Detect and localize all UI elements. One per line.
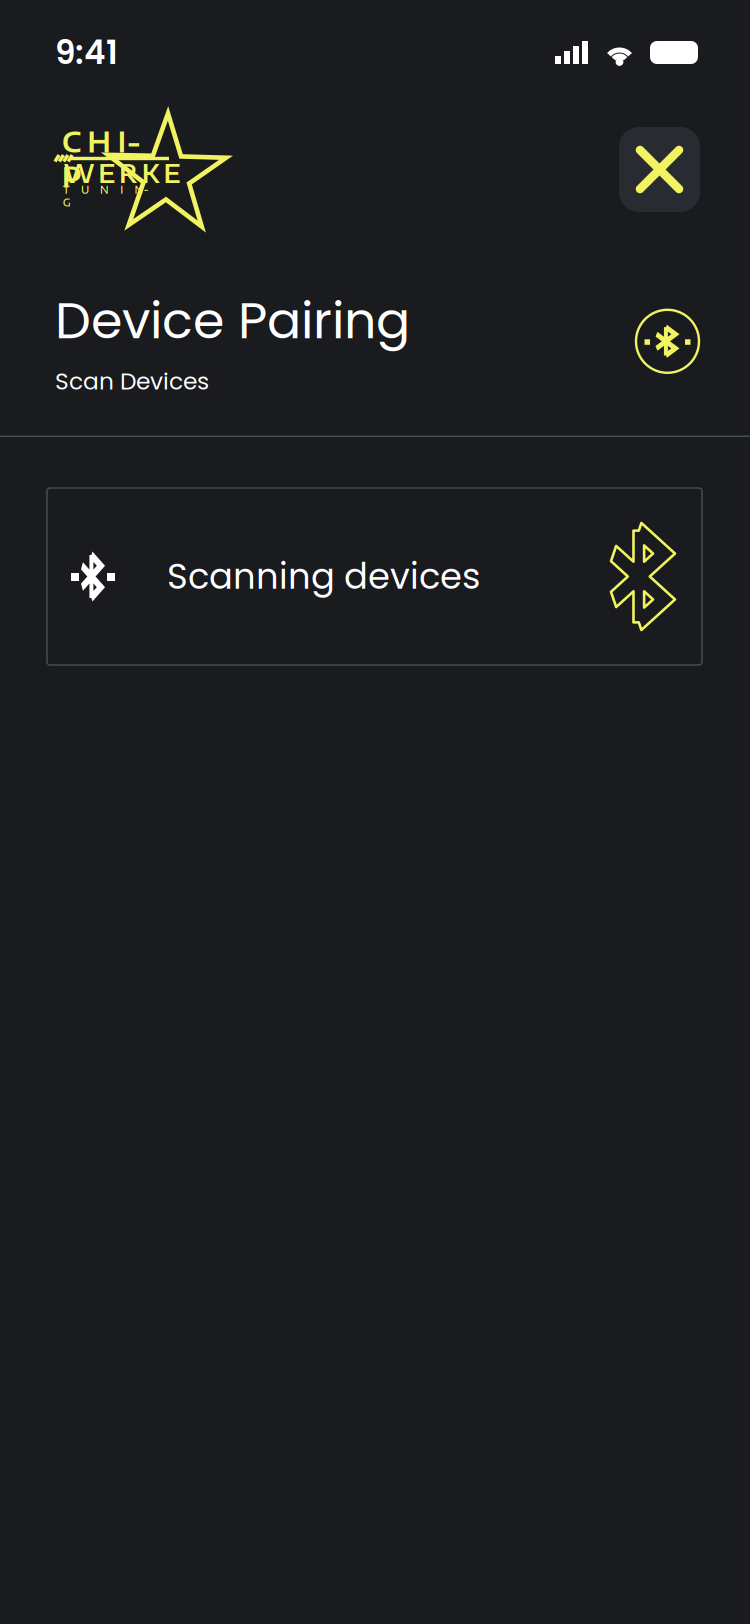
- staticText: TUNING: [63, 183, 163, 196]
- staticText: Device Pairing: [55, 285, 410, 356]
- staticText: Scan Devices: [55, 365, 209, 398]
- staticText: 9:41: [55, 30, 118, 75]
- staticText: Scanning devices: [167, 552, 480, 601]
- button[interactable]: Scanning devices: [47, 488, 702, 665]
- button[interactable]: Close: [619, 127, 700, 212]
- staticText: WERKE: [64, 157, 181, 188]
- staticText: CHIP: [62, 124, 153, 159]
